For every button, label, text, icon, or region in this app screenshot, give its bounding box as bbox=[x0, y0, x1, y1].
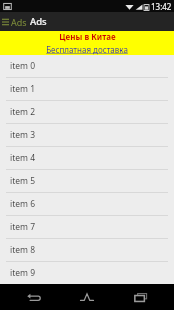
button[interactable]: item 8 bbox=[0, 239, 174, 262]
button[interactable]: Home bbox=[67, 284, 107, 310]
staticText: item 9 bbox=[10, 267, 36, 279]
button[interactable]: item 5 bbox=[0, 170, 174, 193]
staticText: item 4 bbox=[10, 152, 36, 164]
staticText: Бесплатная доставка bbox=[46, 44, 128, 55]
button[interactable]: Цены в Китае bbox=[0, 31, 174, 55]
staticText: item 8 bbox=[10, 244, 36, 256]
button[interactable]: item 0 bbox=[0, 55, 174, 78]
button[interactable]: item 6 bbox=[0, 193, 174, 216]
button[interactable]: Back bbox=[14, 284, 54, 310]
button[interactable]: item 4 bbox=[0, 147, 174, 170]
staticText: Ads bbox=[30, 15, 47, 28]
staticText: item 5 bbox=[10, 175, 36, 187]
button[interactable]: item 7 bbox=[0, 216, 174, 239]
staticText: 13:42 bbox=[151, 1, 172, 12]
staticText: Ads bbox=[11, 16, 27, 28]
staticText: item 7 bbox=[10, 221, 36, 233]
staticText: item 0 bbox=[10, 60, 36, 72]
staticText: item 2 bbox=[10, 106, 36, 118]
button[interactable]: Recent apps bbox=[121, 284, 161, 310]
staticText: item 1 bbox=[10, 83, 36, 95]
staticText: Цены в Китае bbox=[59, 31, 116, 42]
staticText: item 3 bbox=[10, 129, 36, 141]
button[interactable]: item 2 bbox=[0, 101, 174, 124]
button[interactable]: item 3 bbox=[0, 124, 174, 147]
staticText: item 6 bbox=[10, 198, 36, 210]
button[interactable]: item 9 bbox=[0, 262, 174, 284]
button[interactable]: Open navigation menu bbox=[0, 12, 11, 31]
button[interactable]: item 1 bbox=[0, 78, 174, 101]
